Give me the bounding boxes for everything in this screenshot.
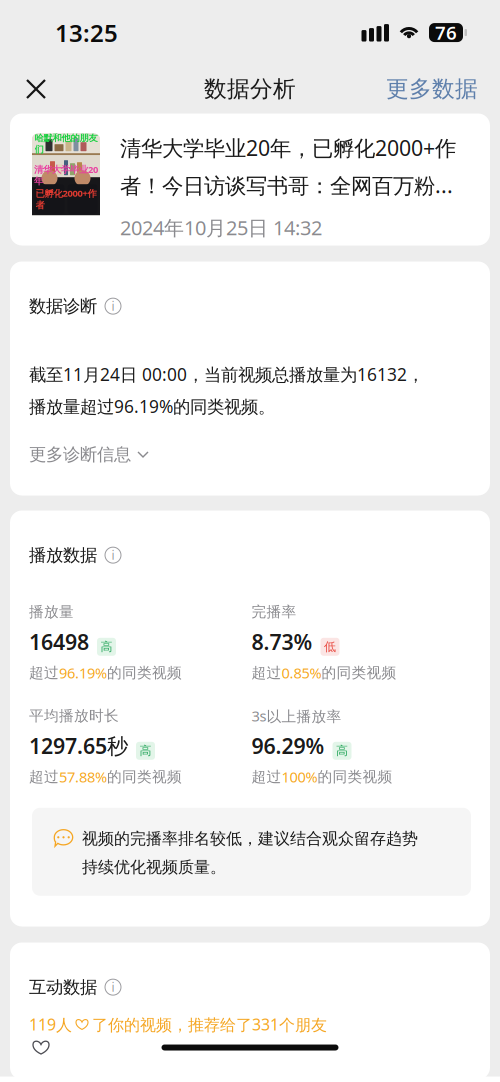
- staticText: 76: [435, 20, 457, 45]
- staticText: 已孵化2000+作者: [35, 187, 96, 211]
- button[interactable]: 更多数据: [386, 67, 478, 111]
- button[interactable]: 喜欢: [19, 1027, 63, 1067]
- staticText: 了你的视频，推荐给了331个朋友: [92, 1014, 327, 1035]
- staticText: 平均播放时长: [29, 707, 119, 725]
- staticText: 13:25: [55, 17, 118, 48]
- staticText: 96.29%: [251, 731, 324, 760]
- staticText: 更多数据: [386, 75, 478, 103]
- staticText: 播放量: [29, 603, 74, 621]
- staticText: 数据分析: [204, 75, 296, 103]
- staticText: 低: [324, 639, 336, 654]
- staticText: 超过: [251, 664, 281, 682]
- staticText: 清华大学毕业20年: [34, 163, 98, 187]
- staticText: 的同类视频: [321, 664, 396, 682]
- staticText: 1297.65秒: [29, 731, 128, 760]
- staticText: 高: [100, 639, 112, 654]
- staticText: 清华大学毕业20年，已孵化2000+作者！今日访谈写书哥：全网百万粉丝大V，超级…: [120, 133, 472, 199]
- button[interactable]: 更多诊断信息: [29, 444, 148, 465]
- staticText: 的同类视频: [107, 664, 182, 682]
- staticText: 16498: [29, 627, 89, 656]
- staticText: 超过: [29, 768, 59, 786]
- staticText: 高: [139, 743, 151, 758]
- staticText: 2024年10月25日 14:32: [120, 214, 322, 241]
- staticText: 播放数据: [29, 544, 97, 566]
- staticText: 超过: [29, 664, 59, 682]
- staticText: 100%: [281, 767, 317, 787]
- staticText: i: [111, 979, 114, 995]
- button[interactable]: 哈默和他的朋友们: [0, 113, 500, 245]
- staticText: 96.19%: [59, 663, 107, 683]
- staticText: 完播率: [251, 603, 296, 621]
- staticText: 3s以上播放率: [251, 706, 341, 726]
- staticText: 0.85%: [281, 663, 321, 683]
- staticText: 57.88%: [59, 767, 107, 787]
- staticText: i: [111, 547, 114, 563]
- staticText: 更多诊断信息: [29, 444, 131, 465]
- staticText: 超过: [251, 768, 281, 786]
- button[interactable]: 关闭: [14, 67, 58, 111]
- staticText: 119人: [29, 1014, 72, 1035]
- staticText: 视频的完播率排名较低，建议结合观众留存趋势持续优化视频质量。: [82, 829, 418, 877]
- staticText: 哈默和他的朋友们: [34, 132, 97, 155]
- staticText: 截至11月24日 00:00，当前视频总播放量为16132，播放量超过96.19…: [29, 363, 424, 418]
- staticText: i: [111, 298, 114, 314]
- staticText: 8.73%: [251, 627, 312, 656]
- staticText: 的同类视频: [317, 768, 392, 786]
- staticText: 互动数据: [29, 976, 97, 998]
- staticText: 的同类视频: [107, 768, 182, 786]
- staticText: 数据诊断: [29, 295, 97, 317]
- staticText: 高: [336, 743, 348, 758]
